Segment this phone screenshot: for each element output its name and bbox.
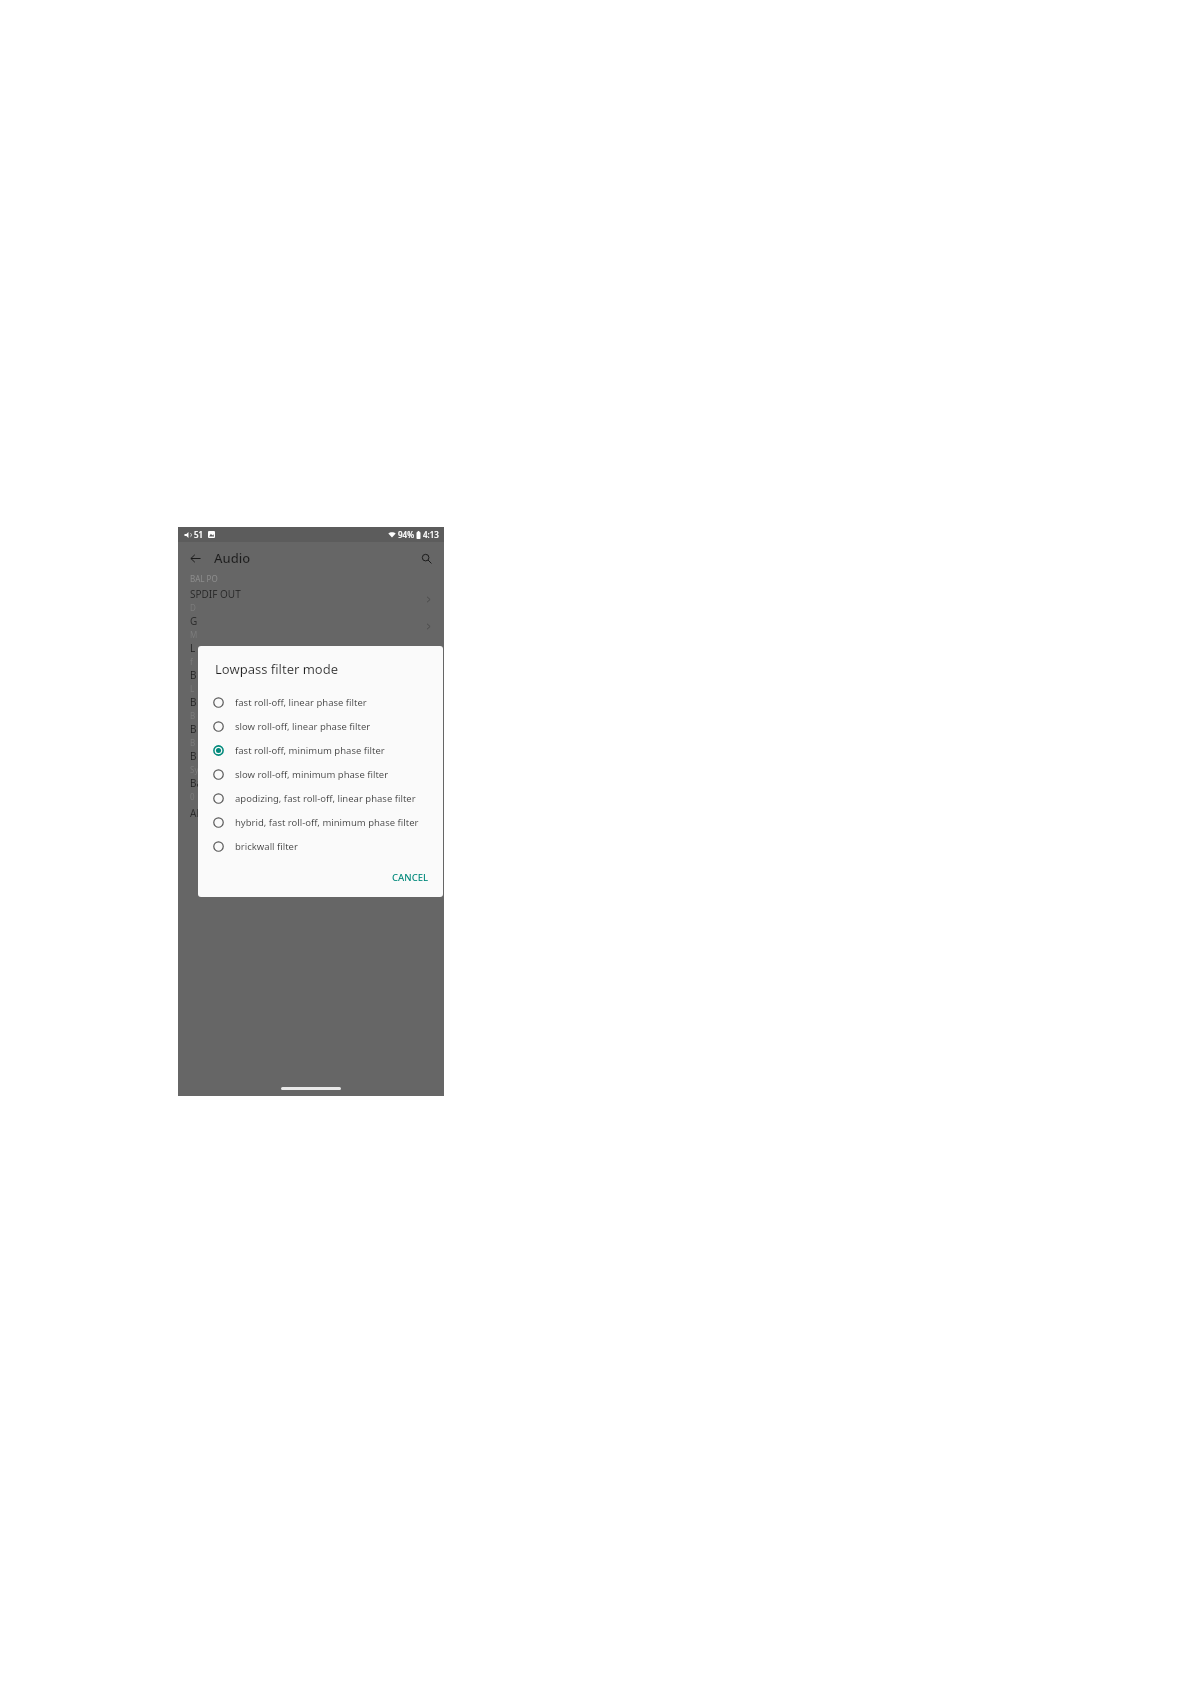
button[interactable]: All To DSD [178,802,444,824]
button[interactable]: B [178,748,444,775]
staticText: All To DSD [190,806,238,820]
staticText: B [190,749,197,763]
button[interactable]: B [178,721,444,748]
staticText: B [190,668,197,682]
button[interactable]: fast roll-off, minimum phase filter [198,738,443,762]
staticText: fast roll-off, linear phase filter [235,696,431,709]
button[interactable]: B [178,694,444,721]
staticText: SPDIF OUT [190,587,241,601]
staticText: hybrid, fast roll-off, minimum phase fil… [235,816,431,829]
staticText: CANCEL [392,871,429,884]
staticText: B [190,722,197,736]
staticText: 94% [398,529,414,540]
staticText: 51 [194,529,204,540]
staticText: B [190,710,196,721]
staticText: B [190,737,196,748]
staticText: f [190,656,193,667]
staticText: Lowpass filter mode [215,660,339,678]
button[interactable]: Search [415,547,437,569]
staticText: M [190,629,198,640]
staticText: apodizing, fast roll-off, linear phase f… [235,792,431,805]
staticText: 4:13 [423,529,439,540]
staticText: fast roll-off, minimum phase filter [235,744,431,757]
staticText: L [190,641,196,655]
staticText: B [190,695,197,709]
staticText: L [190,683,195,694]
button[interactable]: CANCEL [382,865,439,890]
staticText: 0 [190,791,195,802]
button[interactable]: Back [184,547,206,569]
button[interactable]: B [178,667,444,694]
button[interactable]: L [178,640,444,667]
button[interactable]: Balance [178,775,444,802]
staticText: BAL PO [190,573,218,584]
staticText: Sync bluetooth volume [190,764,277,775]
staticText: G [190,614,198,628]
button[interactable]: fast roll-off, linear phase filter [198,690,443,714]
staticText: slow roll-off, minimum phase filter [235,768,431,781]
staticText: D [190,602,196,613]
staticText: Balance [190,776,227,790]
staticText: slow roll-off, linear phase filter [235,720,431,733]
button[interactable]: slow roll-off, linear phase filter [198,714,443,738]
button[interactable]: apodizing, fast roll-off, linear phase f… [198,786,443,810]
staticText: Audio [214,549,251,567]
staticText: brickwall filter [235,840,431,853]
button[interactable]: slow roll-off, minimum phase filter [198,762,443,786]
button[interactable]: brickwall filter [198,834,443,858]
button[interactable]: SPDIF OUT [178,586,444,613]
button[interactable]: hybrid, fast roll-off, minimum phase fil… [198,810,443,834]
